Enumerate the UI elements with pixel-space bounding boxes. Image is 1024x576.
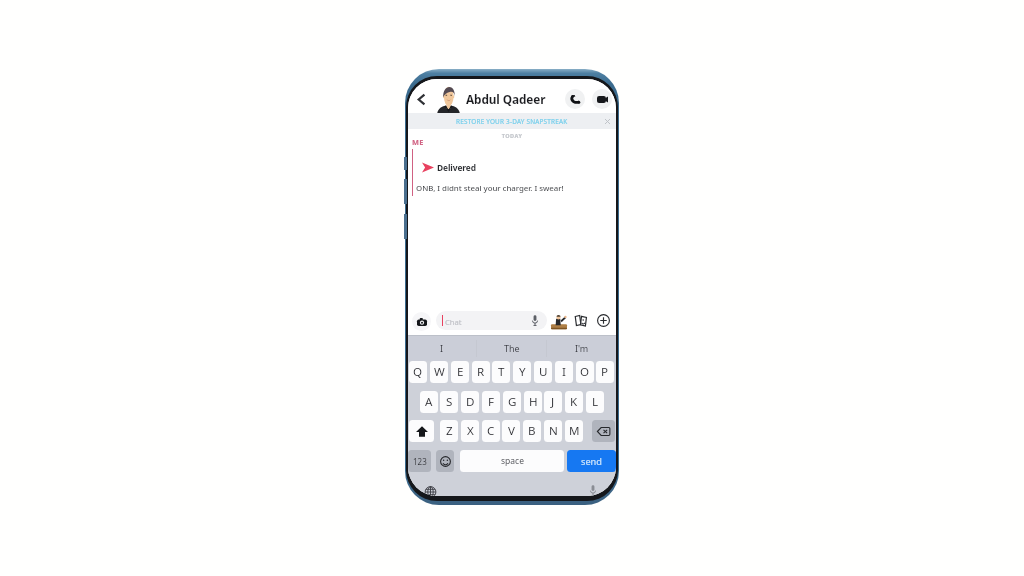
button[interactable]: Y: [513, 361, 531, 383]
staticText: K: [570, 394, 578, 410]
button[interactable]: F: [482, 391, 500, 413]
button[interactable]: G: [503, 391, 521, 413]
staticText: space: [501, 455, 524, 467]
staticText: X: [467, 423, 474, 439]
button[interactable]: Camera: [412, 312, 431, 331]
staticText: B: [528, 423, 536, 439]
button[interactable]: Bitmoji sticker: [551, 313, 567, 330]
staticText: N: [549, 423, 558, 439]
staticText: L: [592, 394, 599, 410]
button[interactable]: space: [460, 450, 564, 472]
button[interactable]: P: [596, 361, 614, 383]
staticText: Y: [519, 364, 526, 380]
button[interactable]: The: [477, 335, 546, 361]
button[interactable]: Stickers: [575, 315, 588, 326]
staticText: A: [425, 394, 433, 410]
staticText: G: [508, 394, 517, 410]
button[interactable]: B: [523, 420, 541, 442]
button[interactable]: C: [482, 420, 500, 442]
staticText: ONB, I didnt steal your charger. I swear…: [416, 183, 564, 194]
staticText: V: [508, 423, 515, 439]
button[interactable]: I: [408, 335, 476, 361]
button[interactable]: Call: [565, 89, 585, 109]
button[interactable]: H: [524, 391, 542, 413]
staticText: U: [539, 364, 548, 380]
button[interactable]: Emoji: [436, 450, 454, 472]
button[interactable]: S: [440, 391, 458, 413]
staticText: Abdul Qadeer: [466, 91, 546, 107]
button[interactable]: T: [492, 361, 510, 383]
button[interactable]: W: [430, 361, 448, 383]
button[interactable]: I: [555, 361, 573, 383]
staticText: RESTORE YOUR 3-DAY SNAPSTREAK: [456, 117, 568, 126]
staticText: S: [446, 394, 453, 410]
staticText: Z: [446, 423, 453, 439]
button[interactable]: K: [565, 391, 583, 413]
other: Backspace: [597, 427, 610, 436]
staticText: R: [477, 364, 485, 380]
button[interactable]: I'm: [547, 335, 616, 361]
staticText: Q: [413, 364, 423, 380]
staticText: 123: [413, 456, 427, 467]
staticText: M: [569, 423, 580, 439]
button[interactable]: U: [534, 361, 552, 383]
button[interactable]: O: [576, 361, 594, 383]
staticText: send: [581, 455, 602, 468]
other: Shift: [416, 426, 428, 437]
button[interactable]: Voice input: [589, 485, 597, 496]
button[interactable]: Dismiss: [602, 116, 613, 127]
staticText: I: [440, 342, 444, 354]
button[interactable]: Shift: [409, 420, 434, 442]
button[interactable]: Voice message: [528, 314, 541, 327]
button[interactable]: L: [586, 391, 604, 413]
button[interactable]: J: [544, 391, 562, 413]
staticText: W: [434, 364, 445, 380]
staticText: H: [529, 394, 538, 410]
staticText: TODAY: [408, 132, 616, 139]
button[interactable]: RESTORE YOUR 3-DAY SNAPSTREAK: [408, 113, 616, 129]
staticText: ME: [412, 137, 424, 147]
other: Emoji: [440, 456, 451, 467]
staticText: C: [487, 423, 495, 439]
button[interactable]: N: [544, 420, 562, 442]
button[interactable]: D: [461, 391, 479, 413]
button[interactable]: R: [472, 361, 490, 383]
button[interactable]: X: [461, 420, 479, 442]
staticText: F: [488, 394, 495, 410]
staticText: Delivered: [437, 162, 476, 173]
button[interactable]: M: [565, 420, 583, 442]
button[interactable]: Back: [414, 92, 429, 107]
button[interactable]: Video call: [592, 89, 612, 109]
button[interactable]: 123: [408, 450, 431, 472]
staticText: T: [498, 364, 505, 380]
button[interactable]: Chat: [436, 311, 547, 330]
staticText: The: [504, 342, 520, 354]
button[interactable]: A: [420, 391, 438, 413]
staticText: E: [457, 364, 464, 380]
staticText: I'm: [575, 342, 589, 354]
staticText: P: [601, 364, 609, 380]
staticText: J: [551, 394, 555, 410]
button[interactable]: Backspace: [592, 420, 615, 442]
button[interactable]: More options: [597, 314, 610, 327]
button[interactable]: V: [502, 420, 520, 442]
staticText: O: [580, 364, 590, 380]
button[interactable]: E: [451, 361, 469, 383]
button[interactable]: Change keyboard: [424, 486, 437, 496]
button[interactable]: Z: [440, 420, 458, 442]
button[interactable]: send: [567, 450, 616, 472]
staticText: D: [466, 394, 475, 410]
staticText: Chat: [445, 317, 462, 327]
button[interactable]: Q: [409, 361, 427, 383]
staticText: I: [562, 364, 566, 380]
